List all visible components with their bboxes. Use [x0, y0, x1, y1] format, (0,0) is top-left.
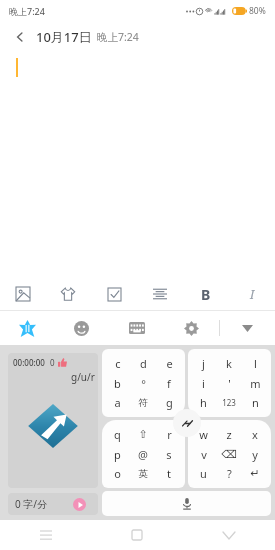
- button[interactable]: j: [188, 349, 271, 417]
- button[interactable]: Insert image: [0, 278, 45, 310]
- staticText: ⌫: [221, 448, 237, 461]
- staticText: c: [115, 356, 121, 371]
- staticText: ?: [227, 466, 232, 481]
- button[interactable]: Handwriting pad: [8, 353, 98, 488]
- button[interactable]: 0 字/分: [8, 493, 98, 515]
- staticText: @: [138, 447, 148, 462]
- staticText: s: [166, 447, 172, 462]
- staticText: r: [167, 427, 172, 442]
- staticText: u: [200, 466, 207, 481]
- staticText: 0: [50, 357, 55, 368]
- staticText: k: [226, 356, 232, 371]
- staticText: h: [200, 395, 207, 410]
- button[interactable]: Space / voice: [102, 491, 271, 516]
- staticText: i: [202, 376, 205, 391]
- staticText: B: [201, 285, 211, 304]
- button[interactable]: q: [102, 420, 185, 488]
- button[interactable]: Emoji: [54, 311, 109, 345]
- staticText: 0 字/分: [15, 497, 48, 511]
- button[interactable]: Switch input mode: [173, 409, 201, 437]
- staticText: g/u/r: [71, 370, 95, 384]
- staticText: 80%: [249, 5, 266, 17]
- button[interactable]: Sticker: [45, 278, 91, 310]
- staticText: 10月17日: [36, 28, 92, 46]
- button[interactable]: Align: [137, 278, 183, 310]
- staticText: 英: [138, 468, 148, 480]
- button[interactable]: Bold: [183, 278, 229, 310]
- staticText: I: [250, 285, 255, 303]
- staticText: n: [252, 395, 259, 410]
- button[interactable]: Checklist: [91, 278, 137, 310]
- staticText: 晚上7:24: [9, 5, 45, 17]
- staticText: x: [252, 427, 258, 442]
- staticText: w: [199, 427, 208, 442]
- staticText: ': [228, 376, 231, 391]
- button[interactable]: c: [102, 349, 185, 417]
- button[interactable]: Italic: [229, 278, 275, 310]
- staticText: m: [250, 376, 261, 391]
- staticText: ↵: [250, 467, 260, 480]
- staticText: e: [166, 356, 173, 371]
- staticText: a: [114, 395, 121, 410]
- staticText: t: [167, 466, 171, 481]
- button[interactable]: Hide keyboard: [220, 311, 275, 345]
- staticText: f: [167, 376, 171, 391]
- button[interactable]: Input method logo: [0, 311, 54, 345]
- staticText: y: [252, 447, 258, 462]
- button[interactable]: Back: [8, 25, 32, 49]
- staticText: v: [201, 447, 207, 462]
- button[interactable]: Back: [183, 520, 275, 550]
- staticText: g: [166, 395, 173, 410]
- staticText: 123: [222, 397, 236, 408]
- staticText: °: [141, 376, 146, 391]
- staticText: p: [114, 447, 121, 462]
- button[interactable]: Recent apps: [0, 520, 91, 550]
- staticText: o: [114, 466, 121, 481]
- button[interactable]: Home: [91, 520, 183, 550]
- staticText: ⇧: [138, 428, 148, 441]
- button[interactable]: Settings: [164, 311, 219, 345]
- staticText: l: [254, 356, 257, 371]
- staticText: 晚上7:24: [97, 30, 139, 44]
- staticText: j: [202, 356, 205, 371]
- staticText: 00:00:00: [13, 357, 45, 368]
- button[interactable]: w: [188, 420, 271, 488]
- staticText: z: [226, 427, 232, 442]
- button[interactable]: Keyboard: [109, 311, 164, 345]
- staticText: d: [140, 356, 147, 371]
- staticText: 符: [138, 397, 148, 409]
- staticText: b: [114, 376, 121, 391]
- staticText: q: [114, 427, 121, 442]
